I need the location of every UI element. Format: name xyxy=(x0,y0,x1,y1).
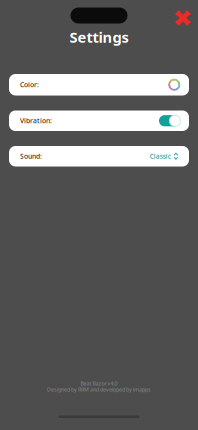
staticText: Sound: xyxy=(20,152,42,161)
staticText: Vibration: xyxy=(20,116,52,125)
button[interactable]: Vibration: xyxy=(9,110,189,131)
staticText: Color: xyxy=(20,80,39,89)
button[interactable]: Close xyxy=(169,4,197,32)
button[interactable]: Sound: xyxy=(9,146,189,166)
staticText: Classic xyxy=(150,152,171,161)
staticText: Settings xyxy=(69,27,128,47)
staticText: Beat Razor v4.0 xyxy=(80,380,117,387)
staticText: Designed by RRM and developed by imapps xyxy=(47,386,151,393)
button[interactable]: Color: xyxy=(9,74,189,95)
